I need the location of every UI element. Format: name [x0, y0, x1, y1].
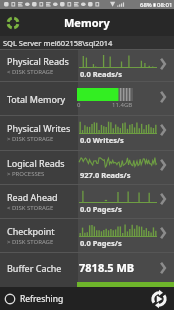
staticText: 0 — [77, 101, 81, 109]
staticText: Checkpoint — [7, 225, 55, 237]
staticText: 0.0 Pages/s — [80, 204, 122, 214]
staticText: 0.0 Pages/s — [80, 238, 122, 248]
staticText: Logical Reads — [7, 157, 65, 169]
staticText: Total Memory — [7, 93, 66, 105]
staticText: < DISK STORAGE — [7, 204, 54, 212]
button[interactable]: Checkpoint — [0, 219, 174, 253]
button[interactable]: SQL Server mel602158\sql2014 — [0, 36, 174, 50]
staticText: > DISK STORAGE — [7, 238, 54, 246]
staticText: 08:01 — [157, 1, 173, 9]
button[interactable]: App logo — [3, 13, 23, 33]
button[interactable]: Logical Reads — [0, 151, 174, 185]
button[interactable]: Buffer Cache — [0, 253, 174, 282]
staticText: 11.4GB — [112, 101, 133, 109]
staticText: 927.0 Reads/s — [80, 170, 131, 180]
button[interactable]: Total Memory — [0, 82, 174, 116]
staticText: Buffer Cache — [7, 262, 62, 274]
staticText: 68% — [140, 1, 152, 9]
staticText: SQL Server mel602158\sql2014 — [3, 38, 113, 48]
staticText: Read Ahead — [7, 191, 58, 203]
staticText: < DISK STORAGE — [7, 68, 54, 76]
staticText: 0.0 Writes/s — [80, 135, 124, 145]
button[interactable]: Physical Writes — [0, 116, 174, 151]
button[interactable]: Refresh — [149, 289, 169, 309]
button[interactable]: Read Ahead — [0, 185, 174, 219]
staticText: 7818.5 MB — [79, 260, 135, 275]
staticText: > PROCESSES — [7, 170, 45, 178]
staticText: Memory — [64, 15, 110, 30]
staticText: Physical Reads — [7, 55, 69, 67]
staticText: Physical Writes — [7, 122, 71, 134]
staticText: > DISK STORAGE — [7, 135, 54, 143]
button[interactable]: Refreshing — [4, 293, 64, 305]
staticText: Refreshing — [20, 293, 64, 305]
button[interactable]: Physical Reads — [0, 50, 174, 82]
staticText: 0.0 Reads/s — [80, 69, 122, 79]
